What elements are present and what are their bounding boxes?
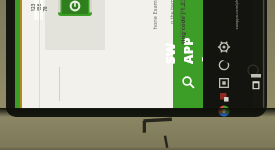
- button[interactable]: Bookmarks: [217, 76, 231, 90]
- button[interactable]: App: [220, 93, 229, 102]
- button[interactable]: [45, 0, 105, 50]
- button[interactable]: Settings: [217, 40, 231, 54]
- staticText: swappa.com/phone-verification: [233, 0, 238, 29]
- button[interactable]: Reload: [217, 58, 231, 72]
- staticText: SWAPPA: [161, 34, 215, 64]
- staticText: n the item: [168, 0, 175, 24]
- button[interactable]: Browser: [218, 105, 230, 117]
- staticText: What is my IMEI or MEID?: [210, 0, 220, 57]
- button[interactable]: Search: [178, 72, 198, 92]
- button[interactable]: SWAPPA: [173, 0, 203, 109]
- staticText: tion in large, clear text: [177, 0, 184, 37]
- staticText: hone Example >: [150, 0, 158, 29]
- staticText: ting code [ 1,2,3,4,5,6,7,8 ]: [179, 0, 187, 44]
- staticText: 12345678: [29, 2, 47, 11]
